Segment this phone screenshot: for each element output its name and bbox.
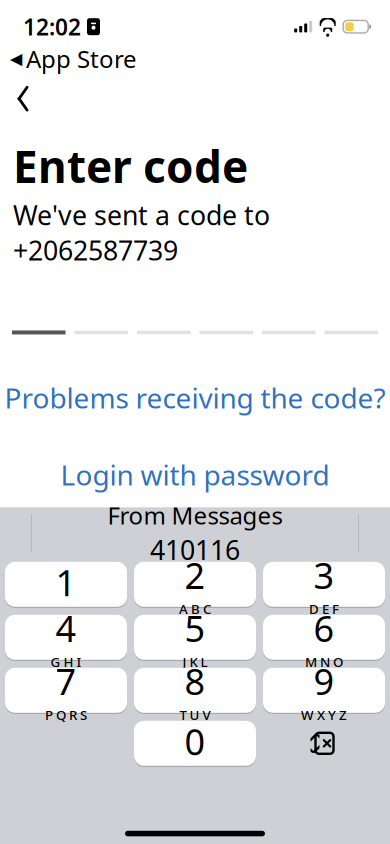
button[interactable]: Problems receiving the code? [0,373,390,422]
button[interactable]: 7 [5,667,127,713]
button[interactable]: 3 [263,561,385,607]
button[interactable]: 5 [134,614,256,660]
button[interactable]: 0 [134,720,256,766]
staticText: 12:02 [23,12,81,42]
staticText: 5 [184,604,205,652]
staticText: Problems receiving the code? [4,379,385,416]
staticText: 1 [55,558,76,606]
button[interactable]: Back [1,77,45,121]
staticText: T U V [179,706,210,724]
staticText: M N O [305,653,343,671]
button[interactable]: 4 [5,614,127,660]
staticText: 410116 [150,532,240,567]
staticText: J K L [182,653,207,671]
button[interactable]: Delete [263,720,385,766]
button[interactable]: 1 [5,561,127,607]
button[interactable]: ◀ [10,43,137,75]
staticText: We've sent a code to +2062587739 [13,197,270,268]
staticText: Enter code [13,137,248,195]
button[interactable]: 2 [134,561,256,607]
staticText: 8 [184,657,205,705]
staticText: 7 [55,657,76,705]
staticText: Login with password [60,456,329,493]
staticText: 2 [184,551,205,599]
staticText: 9 [313,657,334,705]
staticText: ◀ [10,50,22,68]
staticText: W X Y Z [301,706,347,724]
button[interactable]: 6 [263,614,385,660]
staticText: From Messages [107,499,282,531]
staticText: 0 [184,717,205,765]
button[interactable]: Login with password [0,450,390,499]
button[interactable]: From Messages [0,507,390,559]
staticText: A B C [179,600,211,618]
staticText: 6 [313,604,334,652]
staticText: G H I [50,653,81,671]
button[interactable]: 9 [263,667,385,713]
button[interactable]: 8 [134,667,256,713]
staticText: D E F [309,600,339,618]
staticText: 4 [55,604,76,652]
staticText: App Store [26,43,137,75]
staticText: 3 [313,551,334,599]
staticText: P Q R S [45,706,87,724]
